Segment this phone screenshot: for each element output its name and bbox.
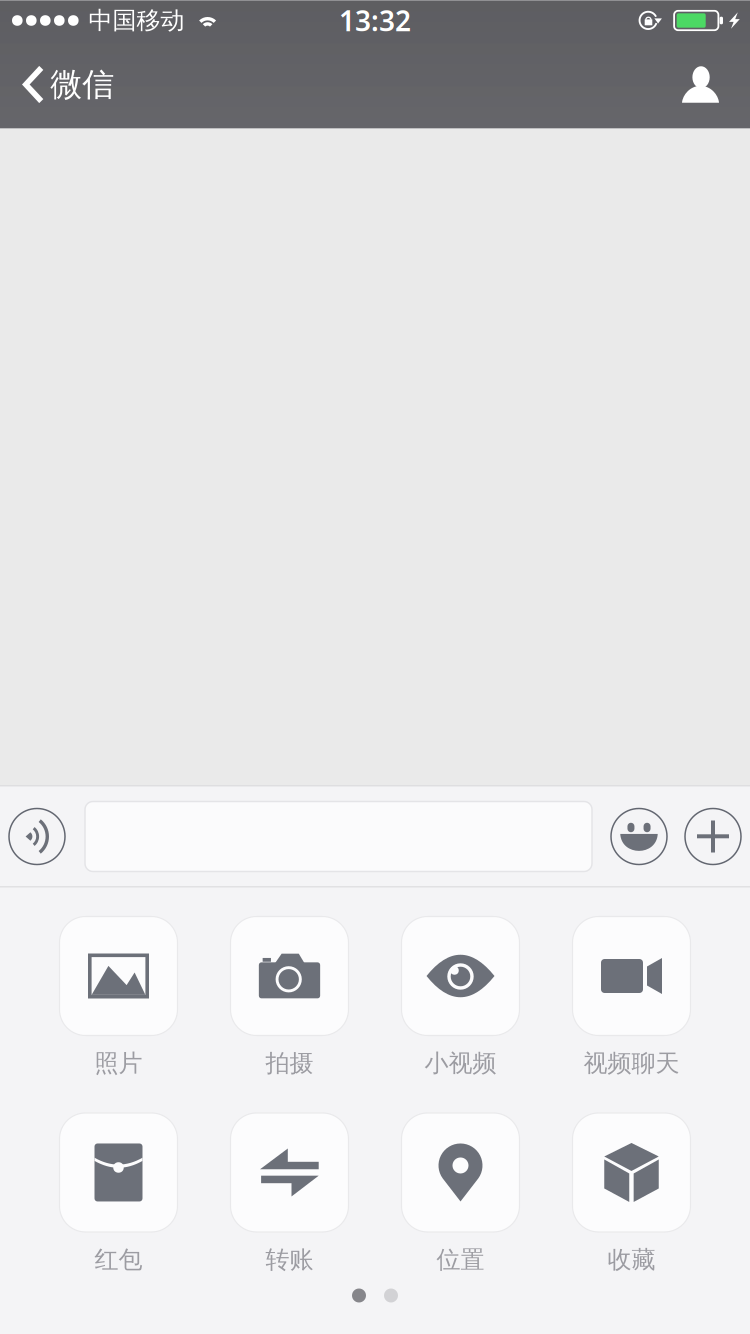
button[interactable]: 收藏 bbox=[546, 1113, 717, 1278]
staticText: 小视频 bbox=[424, 1048, 496, 1078]
staticText: 照片 bbox=[94, 1048, 142, 1078]
button[interactable]: Contact info bbox=[660, 40, 750, 128]
staticText: 转账 bbox=[265, 1245, 313, 1274]
staticText: 红包 bbox=[94, 1245, 142, 1274]
button[interactable]: Emoji bbox=[592, 786, 667, 886]
button[interactable]: 拍摄 bbox=[204, 916, 375, 1082]
button[interactable]: 位置 bbox=[375, 1113, 546, 1278]
staticText: 收藏 bbox=[607, 1245, 655, 1274]
button[interactable]: 微信 bbox=[0, 40, 128, 128]
button[interactable]: More bbox=[667, 786, 750, 886]
staticText: 拍摄 bbox=[265, 1048, 313, 1078]
button[interactable]: 视频聊天 bbox=[546, 916, 717, 1082]
staticText: 13:32 bbox=[339, 2, 411, 39]
button[interactable]: 照片 bbox=[33, 916, 204, 1082]
staticText: 视频聊天 bbox=[583, 1048, 679, 1078]
staticText: 位置 bbox=[436, 1245, 484, 1274]
button[interactable]: Voice message bbox=[0, 786, 85, 886]
staticText: 中国移动 bbox=[89, 6, 185, 35]
staticText: 微信 bbox=[50, 65, 114, 104]
button[interactable]: 转账 bbox=[204, 1113, 375, 1278]
button[interactable]: 小视频 bbox=[375, 916, 546, 1082]
button[interactable]: 红包 bbox=[33, 1113, 204, 1278]
